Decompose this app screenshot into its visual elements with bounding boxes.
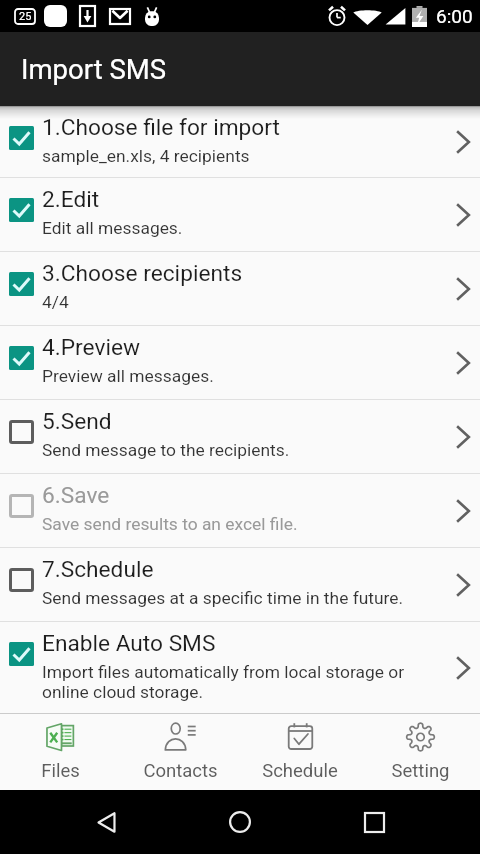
staticText: 4/4: [42, 292, 69, 312]
button[interactable]: Schedule: [240, 714, 360, 790]
staticText: Preview all messages.: [42, 366, 214, 386]
button[interactable]: 1.Choose file for import: [0, 106, 480, 177]
button[interactable]: 6.Save: [0, 474, 480, 547]
staticText: 5.Send: [42, 408, 112, 435]
staticText: Enable Auto SMS: [42, 630, 216, 657]
staticText: Import SMS: [21, 53, 167, 85]
staticText: 2.Edit: [42, 186, 100, 213]
staticText: 3.Choose recipients: [42, 260, 243, 287]
button[interactable]: Setting: [360, 714, 480, 790]
button[interactable]: Files: [0, 714, 120, 790]
button[interactable]: Back: [78, 794, 134, 850]
button[interactable]: 3.Choose recipients: [0, 252, 480, 325]
staticText: 1.Choose file for import: [42, 114, 280, 141]
staticText: 7.Schedule: [42, 556, 154, 583]
staticText: sample_en.xls, 4 recipients: [42, 146, 250, 166]
button[interactable]: 5.Send: [0, 400, 480, 473]
staticText: 25: [19, 10, 32, 23]
staticText: Import files automatically from local st…: [42, 662, 405, 702]
staticText: Send message to the recipients.: [42, 440, 290, 460]
staticText: Save send results to an excel file.: [42, 514, 298, 534]
button[interactable]: Contacts: [120, 714, 240, 790]
staticText: Files: [41, 760, 80, 782]
staticText: Contacts: [143, 760, 218, 782]
staticText: Send messages at a specific time in the …: [42, 588, 404, 608]
button[interactable]: Recent apps: [346, 794, 402, 850]
button[interactable]: 2.Edit: [0, 178, 480, 251]
staticText: 6.Save: [42, 482, 110, 509]
staticText: Setting: [391, 760, 450, 782]
staticText: 6:00: [436, 5, 473, 27]
button[interactable]: Enable Auto SMS: [0, 622, 480, 713]
button[interactable]: 4.Preview: [0, 326, 480, 399]
button[interactable]: 7.Schedule: [0, 548, 480, 621]
staticText: 4.Preview: [42, 334, 140, 361]
button[interactable]: Home: [212, 794, 268, 850]
staticText: Edit all messages.: [42, 218, 183, 238]
staticText: Schedule: [262, 760, 338, 782]
